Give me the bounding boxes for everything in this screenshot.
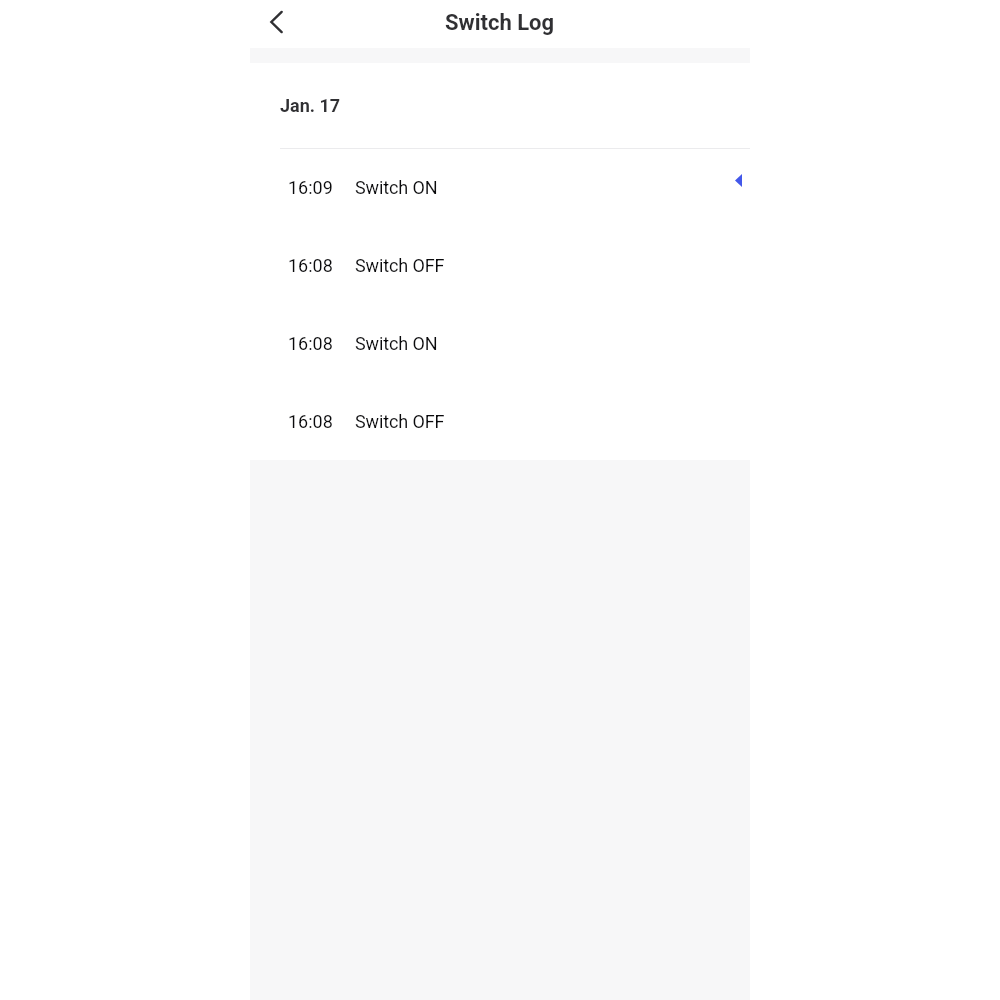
button[interactable]: 16:09 xyxy=(250,166,750,244)
button[interactable]: Latest entry xyxy=(735,174,742,187)
button[interactable]: 16:08 xyxy=(250,322,750,400)
button[interactable]: 16:08 xyxy=(250,400,750,478)
staticText: 16:08 xyxy=(288,411,333,432)
staticText: Jan. 17 xyxy=(280,95,341,116)
staticText: Switch OFF xyxy=(355,411,445,432)
button[interactable]: Back xyxy=(257,2,297,42)
button[interactable]: 16:08 xyxy=(250,244,750,322)
staticText: Switch OFF xyxy=(355,255,445,276)
staticText: 16:08 xyxy=(288,255,333,276)
staticText: 16:09 xyxy=(288,177,333,198)
staticText: Switch ON xyxy=(355,333,438,354)
staticText: Switch Log xyxy=(445,10,555,36)
staticText: 16:08 xyxy=(288,333,333,354)
staticText: Switch ON xyxy=(355,177,438,198)
